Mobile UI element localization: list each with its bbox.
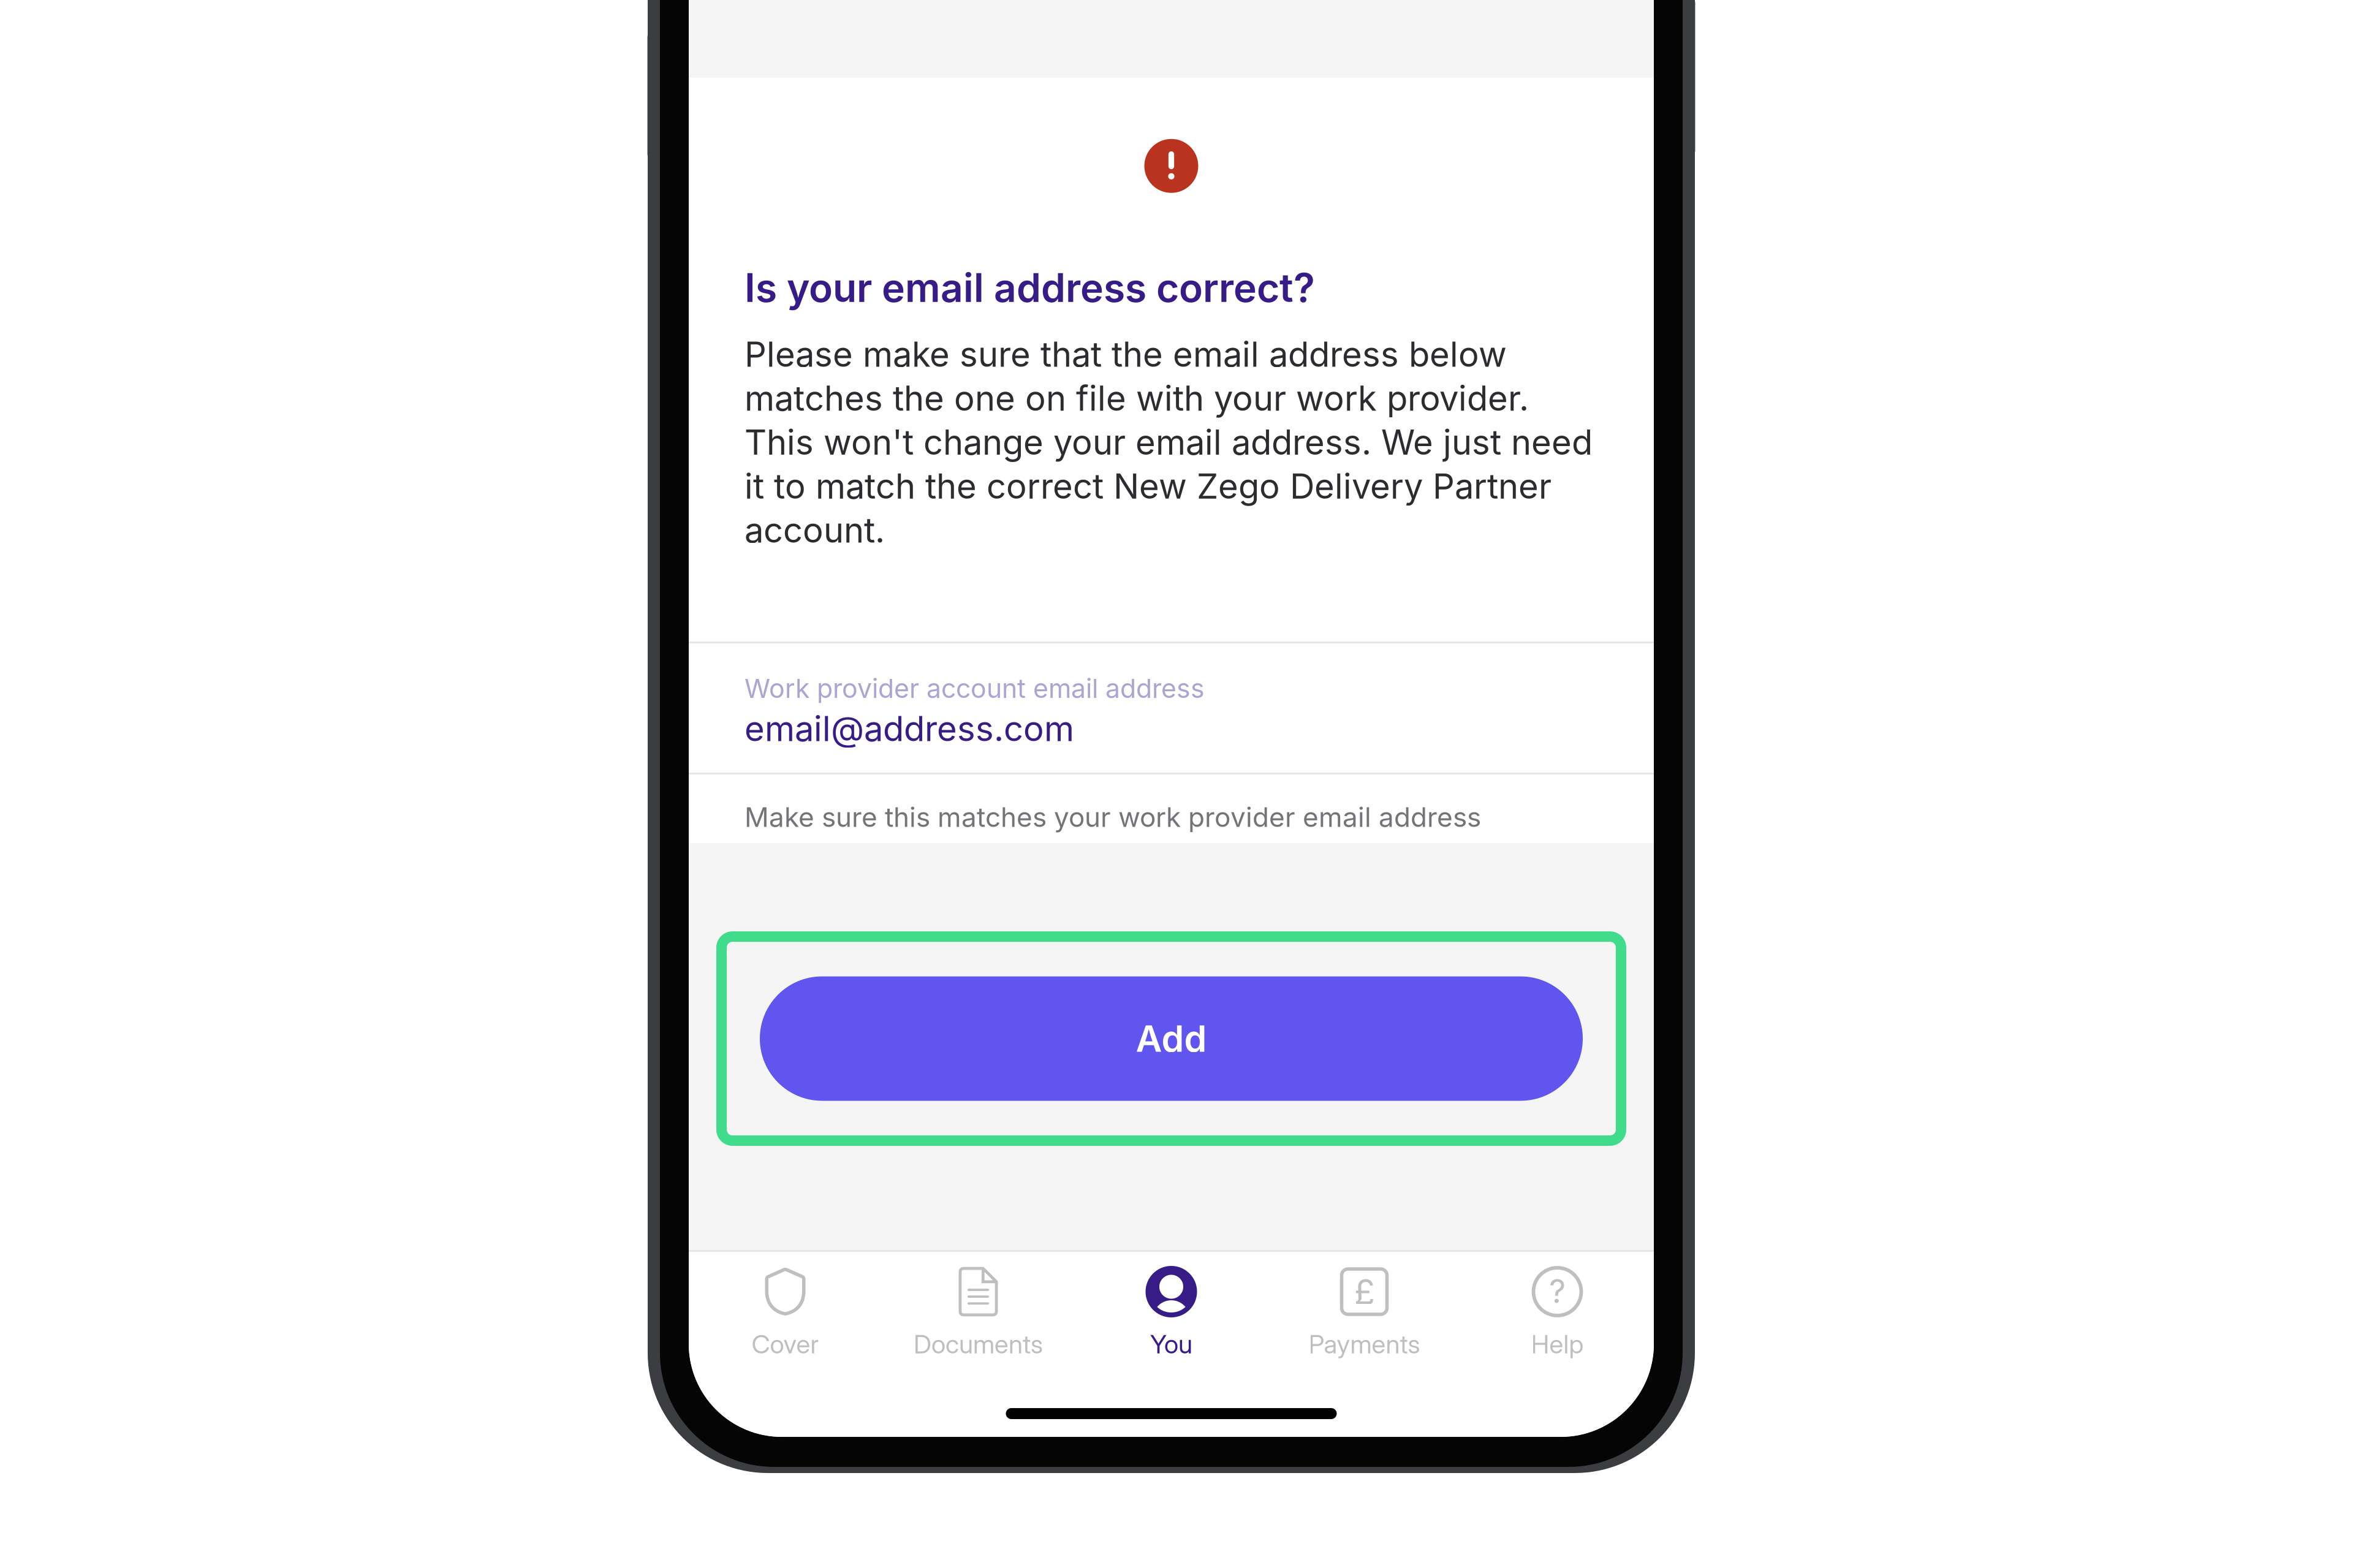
- staticText: ?: [1549, 1271, 1566, 1311]
- button[interactable]: Documents: [882, 1252, 1075, 1364]
- staticText: Payments: [1309, 1328, 1420, 1360]
- button[interactable]: Cover: [689, 1252, 882, 1364]
- staticText: Please make sure that the email address …: [745, 333, 1593, 551]
- staticText: Make sure this matches your work provide…: [745, 801, 1481, 833]
- button[interactable]: You: [1075, 1252, 1268, 1364]
- staticText: Work provider account email address: [745, 673, 1205, 704]
- staticText: Documents: [914, 1328, 1043, 1360]
- staticText: Is your email address correct?: [745, 264, 1315, 311]
- button[interactable]: £: [1268, 1252, 1461, 1364]
- staticText: Add: [1136, 1017, 1207, 1060]
- staticText: email@address.com: [745, 708, 1074, 749]
- button[interactable]: ?: [1461, 1252, 1654, 1364]
- staticText: Help: [1531, 1328, 1584, 1360]
- staticText: You: [1150, 1328, 1192, 1360]
- button[interactable]: Add: [716, 931, 1626, 1146]
- button[interactable]: Work provider account email address: [689, 643, 1654, 773]
- staticText: Cover: [752, 1328, 819, 1360]
- staticText: £: [1354, 1271, 1375, 1312]
